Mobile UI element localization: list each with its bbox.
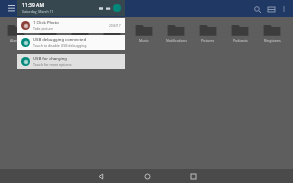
staticText: 1 Click Photo xyxy=(33,20,59,26)
button[interactable]: USB debugging connected xyxy=(17,35,125,50)
staticText: Saturday, March 11 xyxy=(22,9,54,14)
staticText: Podcasts xyxy=(233,38,248,43)
button[interactable]: Recent apps xyxy=(179,169,207,183)
button[interactable]: Alarms xyxy=(0,22,32,43)
staticText: DCIM xyxy=(43,38,53,43)
staticText: USB for charging xyxy=(33,56,67,62)
button[interactable]: Menu xyxy=(5,2,18,15)
staticText: 20/4/17 xyxy=(109,24,121,28)
button[interactable]: Notifications xyxy=(160,22,192,43)
staticText: 11:39 AM xyxy=(22,2,44,9)
staticText: Music xyxy=(139,38,149,43)
button[interactable]: Movies xyxy=(96,22,128,43)
button[interactable]: Pictures xyxy=(192,22,224,43)
button[interactable]: 1 Click Photo xyxy=(17,18,125,33)
staticText: Ringtones xyxy=(264,38,281,43)
staticText: USB debugging connected xyxy=(33,37,87,43)
button[interactable]: Podcasts xyxy=(224,22,256,43)
button[interactable]: Back xyxy=(87,169,115,183)
button[interactable]: Home xyxy=(133,169,161,183)
staticText: Take picture xyxy=(33,26,53,31)
staticText: Touch for more options. xyxy=(33,62,73,67)
button[interactable]: More options xyxy=(278,3,290,15)
button[interactable]: Download xyxy=(64,22,96,43)
staticText: Alarms xyxy=(10,38,22,43)
button[interactable]: USB for charging xyxy=(17,54,125,69)
staticText: Notifications xyxy=(166,38,187,43)
button[interactable]: Ringtones xyxy=(256,22,288,43)
button[interactable]: DCIM xyxy=(32,22,64,43)
button[interactable]: Search xyxy=(250,2,264,16)
staticText: Download xyxy=(72,38,89,43)
button[interactable]: Home xyxy=(21,2,34,15)
button[interactable]: View options xyxy=(264,2,278,16)
staticText: Pictures xyxy=(201,38,215,43)
staticText: Touch to disable USB debugging. xyxy=(33,43,88,48)
button[interactable]: Music xyxy=(128,22,160,43)
button[interactable]: Account xyxy=(113,4,121,12)
